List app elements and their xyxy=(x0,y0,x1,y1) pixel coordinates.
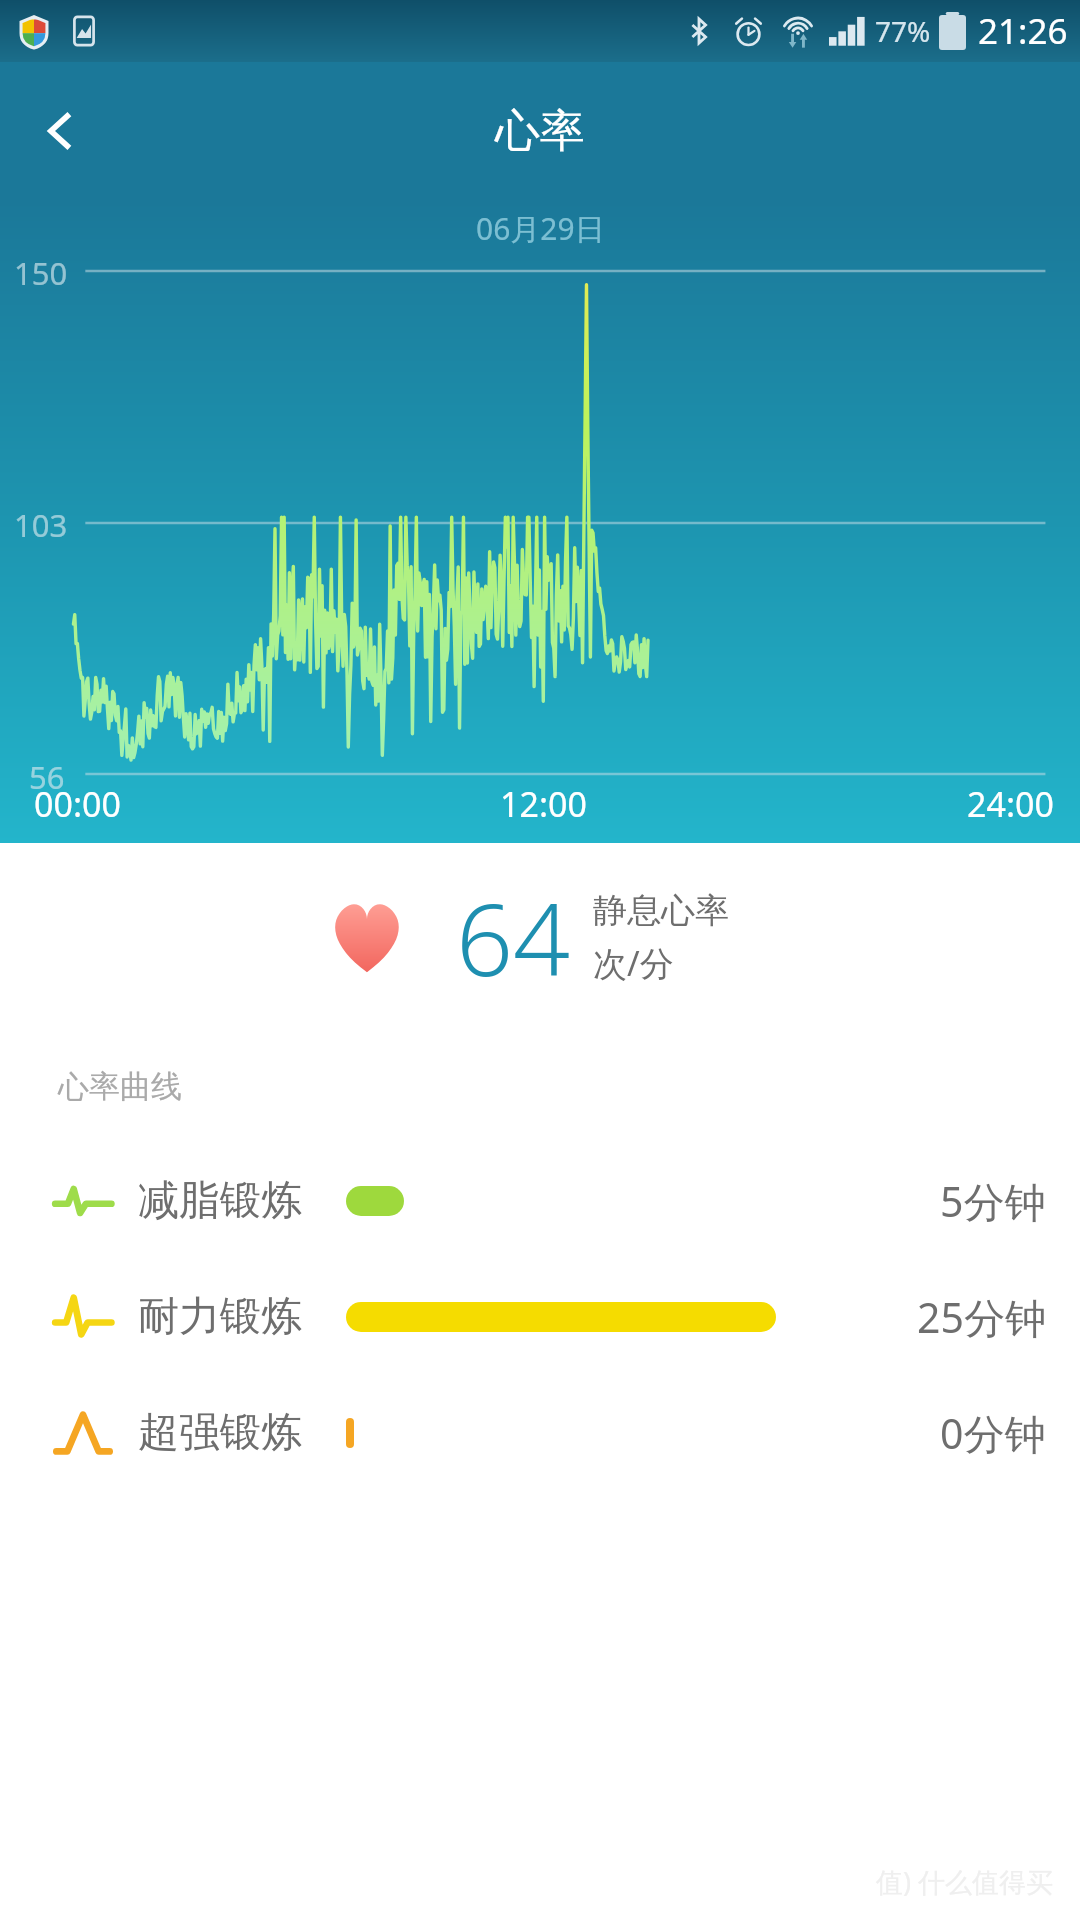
staticText: 次/分 xyxy=(593,940,674,986)
staticText: 5分钟 xyxy=(940,1173,1046,1229)
staticText: 77% xyxy=(875,12,931,50)
button[interactable]: Back xyxy=(16,86,106,176)
staticText: 心率 xyxy=(495,103,585,160)
staticText: 150 xyxy=(14,252,68,294)
staticText: 00:00 xyxy=(34,781,121,827)
staticText: 值) 什么值得买 xyxy=(876,1863,1054,1900)
button[interactable]: 耐力锻炼 xyxy=(0,1274,1080,1360)
staticText: 64 xyxy=(456,869,571,1005)
button[interactable]: 减脂锻炼 xyxy=(0,1158,1080,1244)
staticText: 心率曲线 xyxy=(58,1067,182,1106)
staticText: 06月29日 xyxy=(476,208,605,249)
staticText: 耐力锻炼 xyxy=(138,1291,346,1343)
staticText: 56 xyxy=(29,756,65,798)
staticText: 25分钟 xyxy=(917,1289,1046,1345)
staticText: 12:00 xyxy=(500,781,587,827)
staticText: 21:26 xyxy=(978,7,1068,55)
staticText: 超强锻炼 xyxy=(138,1407,346,1459)
staticText: 0分钟 xyxy=(940,1405,1046,1461)
staticText: 减脂锻炼 xyxy=(138,1175,346,1227)
staticText: 103 xyxy=(14,504,68,546)
button[interactable]: 超强锻炼 xyxy=(0,1390,1080,1476)
staticText: 静息心率 xyxy=(593,889,729,932)
staticText: 24:00 xyxy=(967,781,1054,827)
